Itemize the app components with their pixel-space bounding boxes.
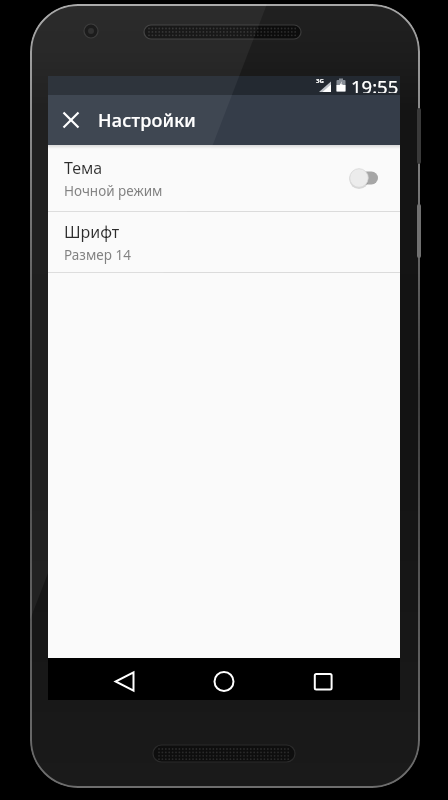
button[interactable]: [48, 658, 166, 700]
button[interactable]: Тема: [48, 145, 400, 211]
staticText: Тема: [64, 157, 103, 179]
staticText: Ночной режим: [64, 182, 163, 200]
staticText: Размер 14: [64, 246, 131, 264]
button[interactable]: [62, 111, 80, 129]
button[interactable]: [166, 658, 283, 700]
staticText: 19:55: [351, 74, 399, 93]
button[interactable]: Шрифт: [48, 212, 400, 272]
button[interactable]: [283, 658, 400, 700]
staticText: Настройки: [98, 108, 197, 133]
staticText: 3G: [316, 77, 324, 85]
staticText: Шрифт: [64, 221, 120, 243]
